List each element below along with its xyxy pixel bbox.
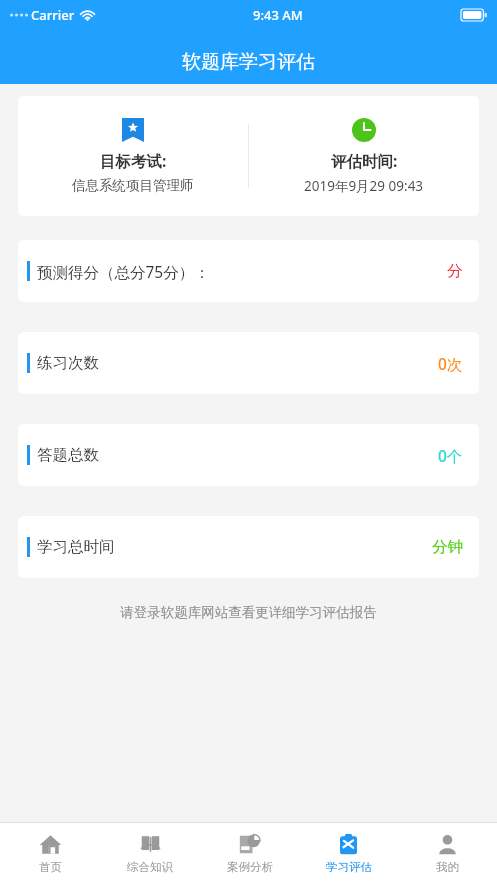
staticText: 综合知识 (127, 860, 173, 874)
staticText: 9:43 AM (253, 6, 303, 24)
button[interactable]: 答题总数 (18, 424, 479, 486)
staticText: 分钟 (432, 537, 463, 557)
button[interactable]: 预测得分（总分75分）： (18, 240, 479, 302)
staticText: 学习总时间 (37, 537, 115, 557)
staticText: 目标考试: (100, 150, 167, 171)
button[interactable]: 我的 (398, 823, 497, 883)
staticText: 评估时间: (331, 150, 398, 171)
staticText: 2019年9月29 09:43 (304, 177, 424, 195)
button[interactable]: 学习评估 (299, 823, 398, 883)
staticText: 首页 (39, 860, 62, 874)
staticText: 案例分析 (227, 860, 273, 874)
button[interactable]: 练习次数 (18, 332, 479, 394)
staticText: Carrier (31, 6, 75, 24)
staticText: 学习评估 (326, 860, 372, 874)
button[interactable]: 案例分析 (200, 823, 299, 883)
staticText: 请登录软题库网站查看更详细学习评估报告 (0, 604, 497, 621)
staticText: 练习次数 (37, 353, 99, 373)
button[interactable]: 目标考试: (18, 96, 479, 216)
staticText: 答题总数 (37, 445, 99, 465)
staticText: 0次 (438, 353, 463, 374)
staticText: 分 (447, 261, 463, 281)
staticText: 我的 (436, 860, 459, 874)
button[interactable]: 首页 (0, 823, 100, 883)
staticText: 软题库学习评估 (182, 50, 315, 74)
button[interactable]: 综合知识 (100, 823, 200, 883)
staticText: 0个 (438, 445, 463, 466)
button[interactable]: 学习总时间 (18, 516, 479, 578)
staticText: 预测得分（总分75分）： (37, 261, 210, 282)
staticText: 信息系统项目管理师 (72, 177, 194, 194)
